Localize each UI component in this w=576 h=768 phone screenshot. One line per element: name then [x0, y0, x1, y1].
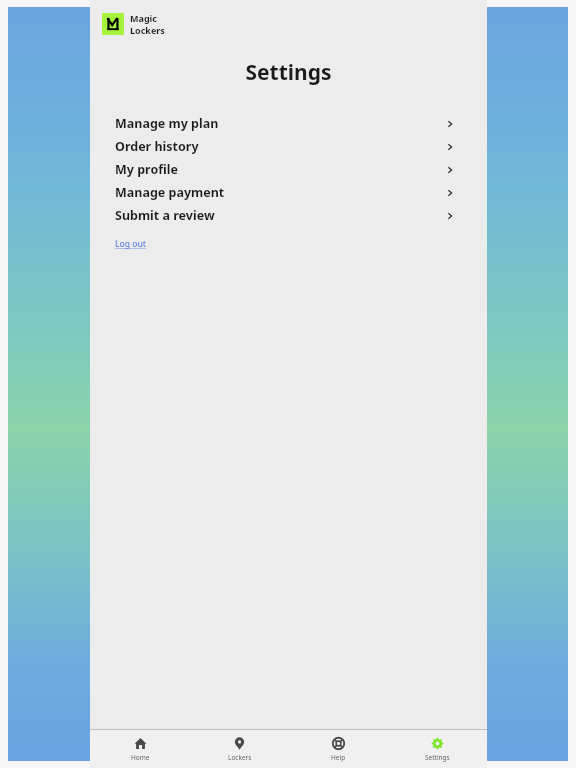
staticText: Settings — [425, 753, 450, 762]
staticText: Log out — [115, 238, 146, 250]
staticText: Lockers — [228, 753, 252, 762]
staticText: My profile — [115, 161, 445, 178]
button[interactable]: My profile — [90, 158, 487, 181]
staticText: Lockers — [130, 24, 165, 36]
staticText: Home — [131, 753, 150, 762]
button[interactable]: Log out — [115, 236, 146, 252]
staticText: Manage my plan — [115, 115, 445, 132]
button[interactable]: Manage my plan — [90, 112, 487, 135]
button[interactable]: Manage payment — [90, 181, 487, 204]
staticText: Magic — [130, 12, 157, 24]
staticText: Order history — [115, 138, 445, 155]
staticText: Settings — [90, 58, 487, 87]
staticText: Manage payment — [115, 184, 445, 201]
staticText: Help — [331, 753, 346, 762]
button[interactable]: Lockers — [190, 730, 289, 768]
button[interactable]: Submit a review — [90, 204, 487, 227]
button[interactable]: Home — [90, 730, 190, 768]
staticText: Submit a review — [115, 207, 445, 224]
button[interactable]: Settings — [388, 730, 487, 768]
button[interactable]: Help — [289, 730, 388, 768]
button[interactable]: Order history — [90, 135, 487, 158]
